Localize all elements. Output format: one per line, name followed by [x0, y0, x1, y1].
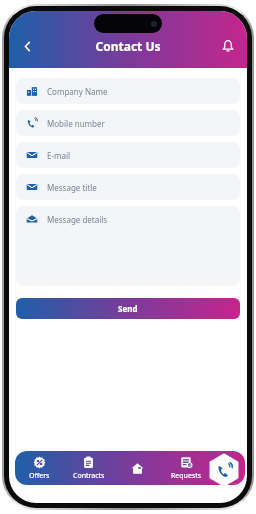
- button[interactable]: Company Name: [16, 78, 240, 104]
- button[interactable]: Contracts: [64, 451, 113, 485]
- button[interactable]: Requests: [162, 451, 211, 485]
- button[interactable]: Call: [205, 451, 243, 489]
- staticText: E-mail: [47, 150, 71, 161]
- staticText: Message details: [47, 214, 108, 225]
- staticText: Company Name: [47, 86, 108, 97]
- staticText: Requests: [171, 471, 202, 481]
- staticText: Mobile number: [47, 118, 105, 129]
- button[interactable]: Send: [16, 298, 240, 319]
- staticText: Message title: [47, 182, 97, 193]
- button[interactable]: Message details: [16, 206, 240, 286]
- button[interactable]: Offers: [15, 451, 64, 485]
- button[interactable]: Message title: [16, 174, 240, 200]
- staticText: Contact Us: [95, 38, 161, 54]
- button[interactable]: Home: [113, 451, 162, 485]
- button[interactable]: Back: [14, 33, 40, 59]
- button[interactable]: E-mail: [16, 142, 240, 168]
- button[interactable]: Mobile number: [16, 110, 240, 136]
- staticText: Contracts: [73, 471, 105, 481]
- button[interactable]: Notifications: [215, 33, 241, 59]
- staticText: Offers: [29, 471, 50, 481]
- staticText: Send: [118, 303, 138, 314]
